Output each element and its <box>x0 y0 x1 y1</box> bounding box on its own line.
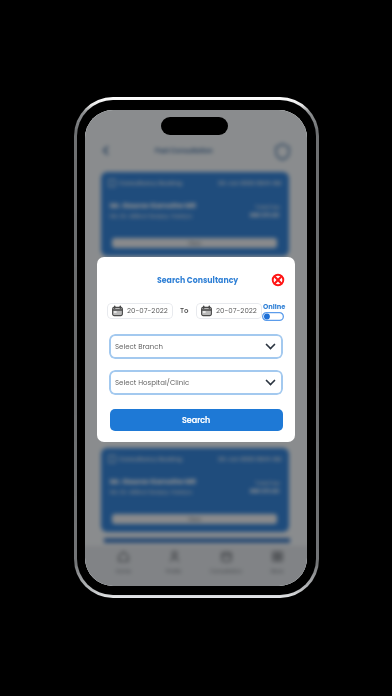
button[interactable]: Select Branch <box>115 334 275 359</box>
staticText: Consultancy Booking <box>119 179 183 187</box>
button[interactable]: 20-07-2022 <box>112 303 168 319</box>
staticText: View <box>188 515 201 523</box>
button[interactable]: Online toggle <box>262 312 284 321</box>
staticText: View <box>188 239 201 247</box>
button[interactable]: Profile <box>154 551 194 575</box>
staticText: Search Consultancy <box>157 275 239 286</box>
button[interactable]: Home <box>103 551 143 575</box>
staticText: Total Fee <box>255 479 280 487</box>
button[interactable]: Search <box>110 409 283 431</box>
button[interactable]: Consultancy Booking <box>101 172 289 256</box>
staticText: INR 271.00 <box>250 211 280 219</box>
staticText: To <box>180 306 189 316</box>
staticText: Mr. Dr. Milind Sanjay Vaidya <box>110 488 192 496</box>
button[interactable]: Security <box>275 143 290 160</box>
staticText: 20-Jul-2022 09:14 AM <box>218 455 282 463</box>
button[interactable]: View <box>112 514 277 524</box>
staticText: Mr. Gaurav Kamothe MR <box>110 201 197 211</box>
button[interactable]: More <box>257 551 297 575</box>
button[interactable]: View <box>112 238 277 248</box>
staticText: 20-07-2022 <box>127 306 168 316</box>
staticText: Consultancy Booking <box>119 455 183 463</box>
button[interactable]: Close <box>270 272 286 288</box>
staticText: Past Consultation <box>155 146 213 155</box>
staticText: Search <box>182 415 211 426</box>
staticText: INR 271.00 <box>250 487 280 495</box>
button[interactable]: Consultation <box>206 551 246 575</box>
staticText: Select Hospital/Clinic <box>115 378 190 388</box>
staticText: Mr. Dr. Milind Sanjay Vaidya <box>110 212 192 220</box>
button[interactable]: Select Hospital/Clinic <box>115 370 275 395</box>
staticText: 20-Jul-2022 09:14 AM <box>218 179 282 187</box>
staticText: Mr. Gaurav Kamothe MR <box>110 477 197 487</box>
staticText: Online <box>263 302 286 311</box>
button[interactable]: 20-07-2022 <box>201 303 257 319</box>
button[interactable]: Back <box>100 145 111 156</box>
staticText: Select Branch <box>115 342 164 352</box>
staticText: 20-07-2022 <box>216 306 257 316</box>
button[interactable]: Consultancy Booking <box>101 448 289 532</box>
staticText: Total Fee <box>255 203 280 211</box>
